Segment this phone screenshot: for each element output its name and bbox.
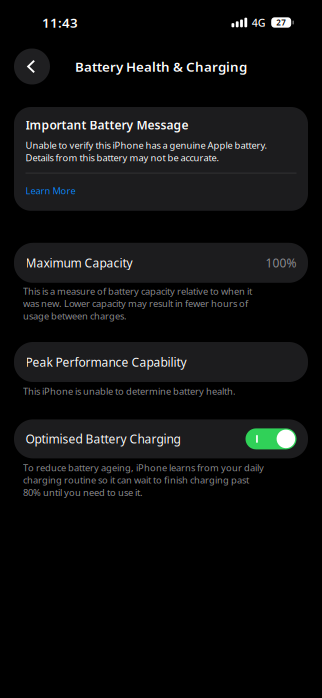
staticText: 27	[276, 17, 286, 28]
staticText: Battery Health & Charging	[75, 58, 247, 75]
staticText: Optimised Battery Charging	[25, 431, 180, 447]
staticText: Unable to verify this iPhone has a genui…	[25, 139, 267, 164]
button[interactable]: Back	[14, 48, 50, 84]
staticText: Learn More	[25, 184, 75, 197]
staticText: Peak Performance Capability	[25, 354, 186, 370]
staticText: This is a measure of battery capacity re…	[23, 285, 252, 322]
staticText: 100%	[265, 255, 296, 271]
staticText: 4G	[252, 15, 266, 30]
staticText: Maximum Capacity	[25, 255, 132, 271]
button[interactable]: Optimised Battery Charging	[245, 428, 296, 449]
button[interactable]: Learn More	[25, 173, 296, 211]
staticText: To reduce battery ageing, iPhone learns …	[23, 461, 264, 499]
staticText: 11:43	[42, 14, 78, 31]
staticText: This iPhone is unable to determine batte…	[23, 385, 236, 397]
staticText: Important Battery Message	[25, 117, 188, 133]
